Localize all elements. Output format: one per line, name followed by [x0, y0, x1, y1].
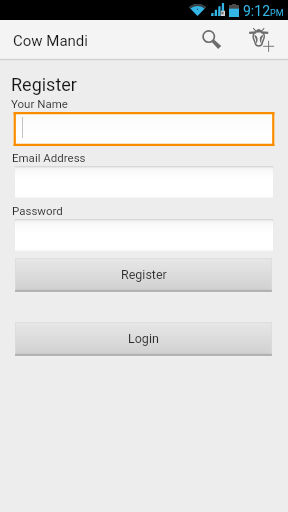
staticText: Cow Mandi — [13, 32, 88, 50]
button[interactable]: Login — [15, 322, 272, 359]
button[interactable]: Register — [15, 258, 272, 295]
staticText: 9:12 — [243, 3, 270, 19]
staticText: Your Name — [11, 97, 68, 110]
staticText: Login — [128, 331, 159, 346]
button[interactable] — [14, 219, 274, 251]
button[interactable]: Add cow — [238, 20, 286, 59]
button[interactable] — [14, 166, 274, 198]
staticText: PM — [270, 8, 284, 19]
staticText: Password — [12, 204, 63, 217]
staticText: Email Address — [12, 151, 86, 164]
button[interactable] — [13, 112, 275, 146]
staticText: Register — [11, 74, 77, 95]
staticText: Register — [121, 267, 167, 282]
button[interactable]: Search — [191, 20, 231, 59]
